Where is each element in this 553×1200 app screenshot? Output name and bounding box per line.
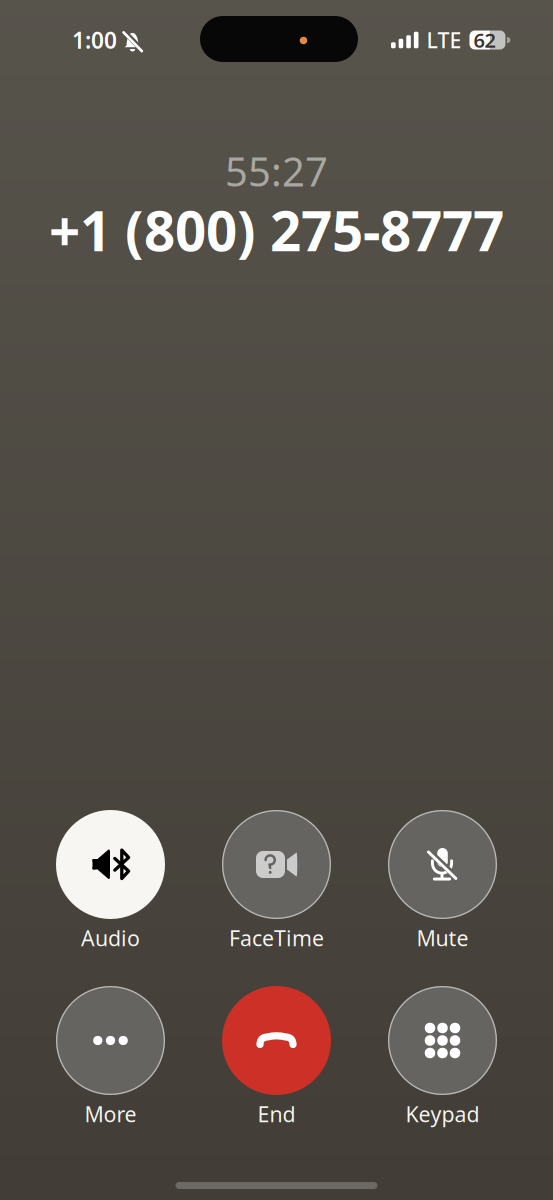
button[interactable]: End	[193, 984, 359, 1128]
button[interactable]: Audio	[27, 808, 193, 952]
staticText: 62	[473, 27, 495, 53]
staticText: End	[257, 1100, 295, 1128]
button[interactable]: Mute	[359, 808, 525, 952]
staticText: FaceTime	[229, 924, 324, 952]
staticText: 55:27	[225, 144, 328, 197]
staticText: +1 (800) 275-8777	[49, 194, 504, 266]
button[interactable]: FaceTime	[193, 808, 359, 952]
staticText: Audio	[81, 924, 140, 952]
staticText: Keypad	[405, 1100, 479, 1128]
staticText: 1:00	[72, 25, 117, 55]
staticText: Mute	[416, 924, 468, 952]
button[interactable]: Keypad	[359, 984, 525, 1128]
button[interactable]: More	[27, 984, 193, 1128]
staticText: LTE	[426, 26, 461, 54]
staticText: More	[84, 1100, 136, 1128]
